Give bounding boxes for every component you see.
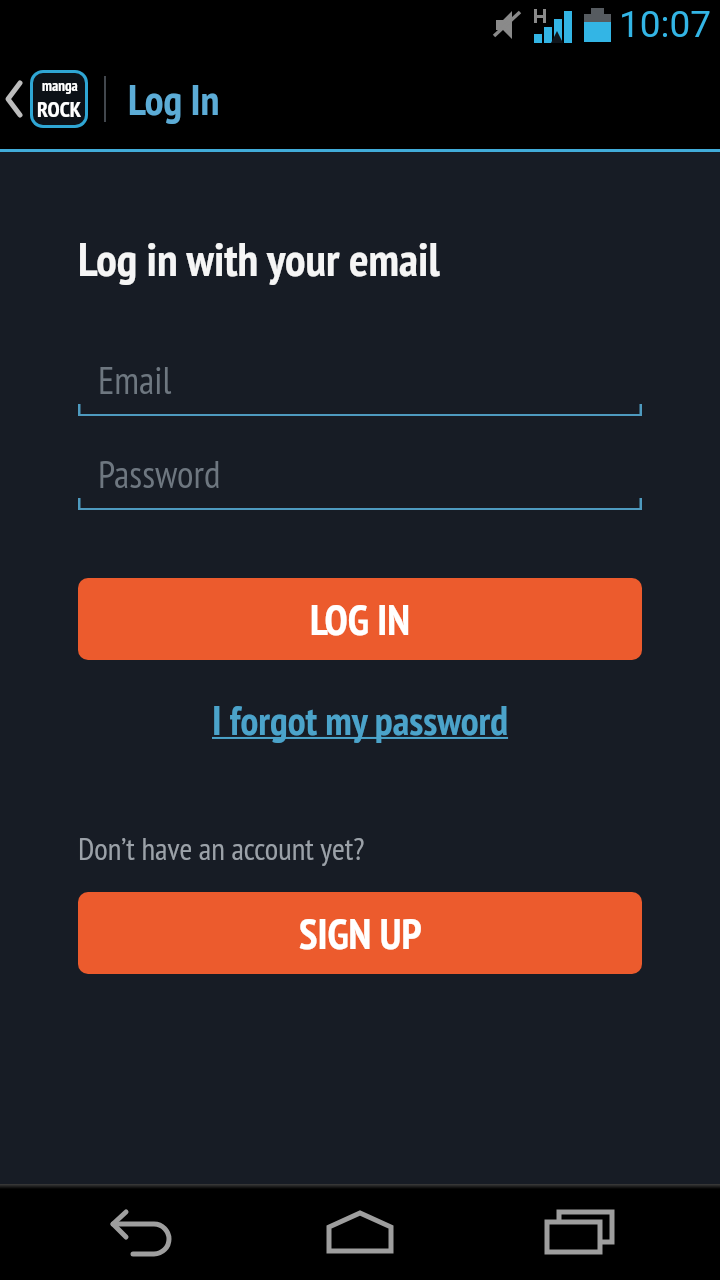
staticText: LOG IN [310,592,411,646]
button[interactable] [30,1184,250,1280]
button[interactable]: Password [78,449,642,510]
staticText: Log in with your email [78,229,440,289]
button[interactable]: Email [78,355,642,416]
staticText: Password [98,449,221,498]
button[interactable]: LOG IN [78,578,642,660]
button[interactable]: manga [30,70,88,128]
staticText: SIGN UP [299,906,422,960]
staticText: Don’t have an account yet? [78,828,365,868]
button[interactable] [0,49,30,149]
staticText: manga [42,76,78,95]
button[interactable]: SIGN UP [78,892,642,974]
staticText: 10:07 [619,3,712,46]
button[interactable]: I forgot my password [212,694,509,746]
staticText: I forgot my password [212,694,509,746]
button[interactable] [470,1184,690,1280]
staticText: Email [98,355,172,404]
staticText: ROCK [37,95,82,123]
button[interactable] [250,1184,470,1280]
staticText: Log In [128,72,220,126]
